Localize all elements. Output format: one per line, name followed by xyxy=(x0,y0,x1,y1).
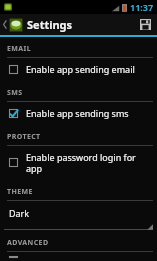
staticText: Enable password login for app xyxy=(26,151,151,174)
staticText: PROTECT xyxy=(7,132,41,142)
staticText: 11:37 xyxy=(130,1,154,13)
button[interactable]: Use internal IPTables for port forwardin… xyxy=(0,252,157,261)
staticText: SMS xyxy=(7,88,23,98)
button[interactable]: Settings xyxy=(0,17,73,32)
staticText: Enable app sending email xyxy=(26,63,135,75)
button[interactable]: Save xyxy=(134,14,157,35)
staticText: Dark xyxy=(9,207,30,219)
button[interactable]: Dark xyxy=(0,201,157,230)
staticText: Enable app sending sms xyxy=(26,107,129,119)
button[interactable]: Enable password login for app xyxy=(0,146,157,179)
button[interactable]: Enable app sending email xyxy=(0,58,157,80)
staticText: ADVANCED xyxy=(7,238,49,248)
staticText: EMAIL xyxy=(7,44,32,54)
staticText: THEME xyxy=(7,187,33,197)
staticText: Settings xyxy=(27,17,73,32)
button[interactable]: Enable app sending sms xyxy=(0,102,157,124)
